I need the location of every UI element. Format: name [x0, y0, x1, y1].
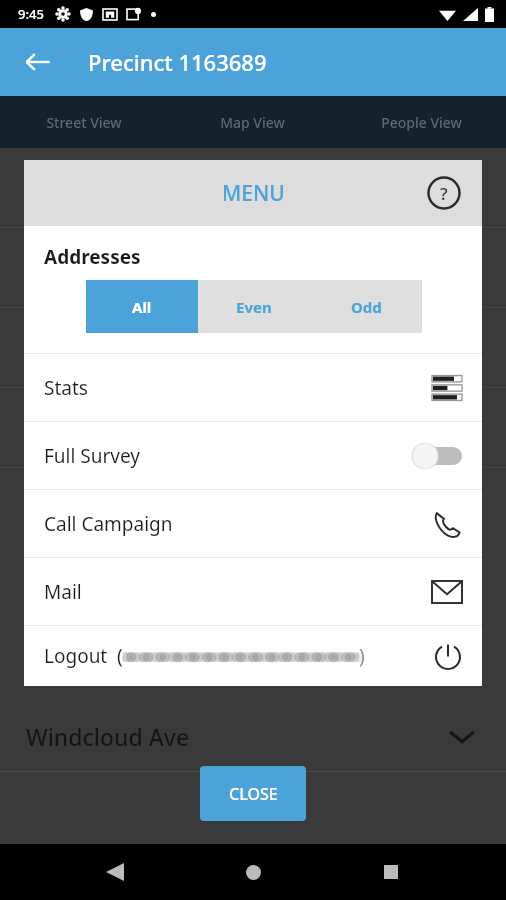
- button[interactable]: Odd: [310, 280, 422, 333]
- button[interactable]: Street View: [0, 96, 168, 148]
- button[interactable]: Call Campaign: [24, 490, 482, 557]
- button[interactable]: Even: [198, 280, 310, 333]
- staticText: 9:45: [18, 5, 44, 23]
- button[interactable]: Mail: [24, 558, 482, 625]
- other: Logout: [434, 642, 462, 670]
- button[interactable]: Recents: [368, 849, 414, 895]
- button[interactable]: Home: [230, 849, 276, 895]
- staticText: Call Campaign: [44, 511, 432, 537]
- staticText: ?: [440, 182, 448, 205]
- staticText: Full Survey: [44, 443, 410, 469]
- button[interactable]: Stats: [24, 354, 482, 421]
- staticText: Street View: [46, 113, 122, 132]
- staticText: Odd: [351, 297, 382, 317]
- staticText: Even: [236, 297, 272, 317]
- button[interactable]: Back: [14, 38, 62, 86]
- staticText: Logout: [44, 643, 108, 669]
- staticText: All: [132, 297, 152, 317]
- button[interactable]: Full Survey: [24, 422, 482, 489]
- staticText: ): [359, 643, 365, 669]
- button[interactable]: Help: [424, 173, 464, 213]
- staticText: Windcloud Ave: [26, 721, 190, 752]
- button[interactable]: Back: [92, 849, 138, 895]
- staticText: Map View: [220, 113, 285, 132]
- staticText: Stats: [44, 375, 432, 401]
- staticText: Mail: [44, 579, 432, 605]
- button[interactable]: Logout: [24, 626, 482, 686]
- staticText: CLOSE: [229, 783, 278, 805]
- button[interactable]: People View: [337, 96, 506, 148]
- button[interactable]: Map View: [168, 96, 337, 148]
- staticText: Addresses: [44, 244, 141, 270]
- button[interactable]: CLOSE: [200, 766, 306, 821]
- staticText: (: [117, 643, 123, 669]
- staticText: MENU: [222, 179, 285, 208]
- other: Mail: [432, 581, 462, 603]
- staticText: People View: [381, 113, 462, 132]
- other: Stats: [432, 373, 462, 403]
- other: Call Campaign: [432, 509, 462, 539]
- staticText: Precinct 1163689: [88, 47, 267, 77]
- button[interactable]: All: [86, 280, 198, 333]
- other: Full Survey toggle: [410, 443, 462, 469]
